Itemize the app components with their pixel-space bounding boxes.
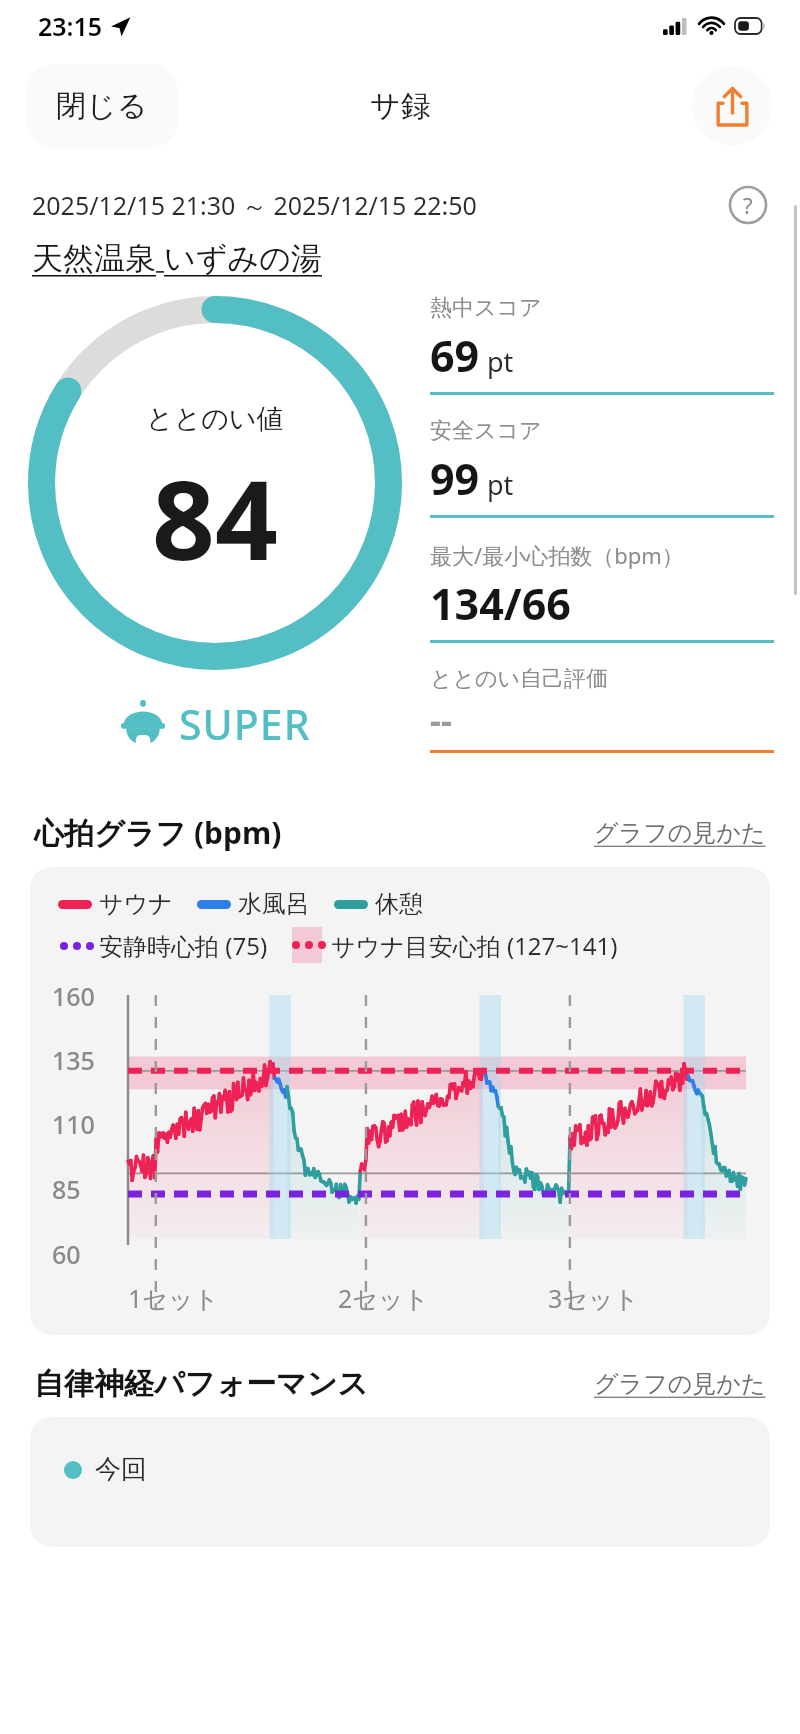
- staticText: 3セット: [548, 1281, 640, 1315]
- staticText: 熱中スコア: [430, 294, 542, 322]
- staticText: 1セット: [128, 1281, 220, 1315]
- staticText: 69: [430, 326, 480, 385]
- button[interactable]: Help: [728, 185, 768, 225]
- staticText: 160: [52, 979, 95, 1013]
- staticText: 自律神経パフォーマンス: [34, 1365, 369, 1403]
- staticText: サウナ: [99, 889, 173, 919]
- staticText: 最大/最小心拍数（bpm）: [430, 540, 684, 570]
- staticText: 今回: [95, 1453, 147, 1486]
- button[interactable]: グラフの見かた: [594, 1369, 766, 1399]
- staticText: --: [430, 697, 452, 743]
- button[interactable]: グラフの見かた: [594, 818, 766, 848]
- button[interactable]: Share: [692, 66, 772, 146]
- staticText: ととのい値: [146, 402, 284, 436]
- button[interactable]: 天然温泉 いずみの湯: [32, 236, 322, 278]
- staticText: サ録: [370, 87, 431, 125]
- staticText: 23:15: [38, 9, 103, 43]
- staticText: pt: [487, 466, 514, 503]
- staticText: 心拍グラフ (bpm): [34, 812, 282, 853]
- staticText: 110: [52, 1107, 95, 1141]
- staticText: 2セット: [338, 1281, 430, 1315]
- staticText: pt: [487, 343, 514, 380]
- staticText: 84: [152, 442, 278, 592]
- staticText: 水風呂: [238, 889, 310, 919]
- staticText: 135: [52, 1043, 95, 1077]
- staticText: ?: [743, 190, 753, 220]
- staticText: 安全スコア: [430, 417, 542, 445]
- staticText: SUPER: [179, 696, 311, 752]
- staticText: 休憩: [375, 889, 423, 919]
- staticText: 85: [52, 1172, 81, 1206]
- staticText: 99: [430, 449, 480, 508]
- staticText: 2025/12/15 21:30 ～ 2025/12/15 22:50: [32, 188, 477, 222]
- button[interactable]: 閉じる: [26, 64, 178, 148]
- staticText: 閉じる: [56, 87, 148, 125]
- staticText: ととのい自己評価: [430, 665, 609, 693]
- staticText: 134/66: [430, 574, 571, 633]
- staticText: サウナ目安心拍 (127~141): [331, 929, 618, 962]
- staticText: 60: [52, 1237, 81, 1271]
- staticText: 安静時心拍 (75): [99, 929, 268, 962]
